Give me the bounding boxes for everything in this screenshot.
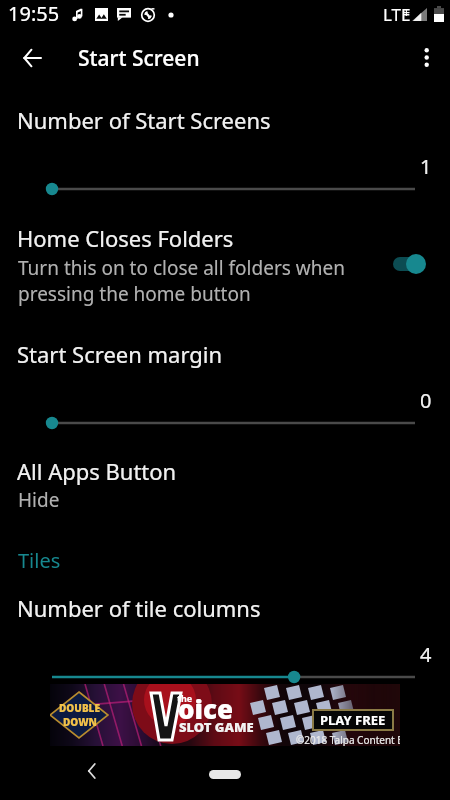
staticText: Number of tile columns [17,593,261,623]
button[interactable]: All Apps Button [0,450,450,520]
button[interactable]: Back [76,755,108,787]
button[interactable]: Advertisement [50,684,400,746]
button[interactable]: Toggle Home Closes Folders [386,244,436,284]
staticText: PLAY FREE [320,711,386,729]
staticText: the [177,692,193,704]
staticText: Start Screen [78,44,200,73]
staticText: ©2018 Talpa Content B.V. [296,733,400,746]
staticText: Tiles [18,547,61,574]
staticText: LTE [383,3,411,26]
staticText: Home Closes Folders [17,223,234,253]
staticText: 4 [420,641,432,668]
staticText: SLOT GAME [179,718,254,736]
staticText: pressing the home button [18,281,251,307]
button[interactable]: More options [402,34,448,80]
button[interactable]: Home Closes Folders [0,216,450,308]
button[interactable]: Home [209,770,241,779]
button[interactable]: Back [8,34,56,82]
staticText: Hide [18,487,60,513]
staticText: 1 [420,153,432,180]
staticText: All Apps Button [17,456,177,486]
button[interactable]: Slider [0,409,450,437]
staticText: Turn this on to close all folders when [18,255,345,281]
staticText: + [403,4,410,20]
staticText: Start Screen margin [17,339,223,369]
staticText: Number of Start Screens [17,105,271,135]
button[interactable]: Start Screen margin [0,332,450,438]
staticText: 19:55 [8,0,60,27]
button[interactable]: Number of tile columns [0,586,450,692]
staticText: 0 [420,387,432,414]
staticText: oice [178,691,234,726]
button[interactable]: Slider [0,175,450,203]
button[interactable]: Slider [0,663,450,691]
staticText: DOWN [63,715,97,729]
button[interactable]: Number of Start Screens [0,98,450,204]
staticText: DOUBLE [59,701,100,715]
